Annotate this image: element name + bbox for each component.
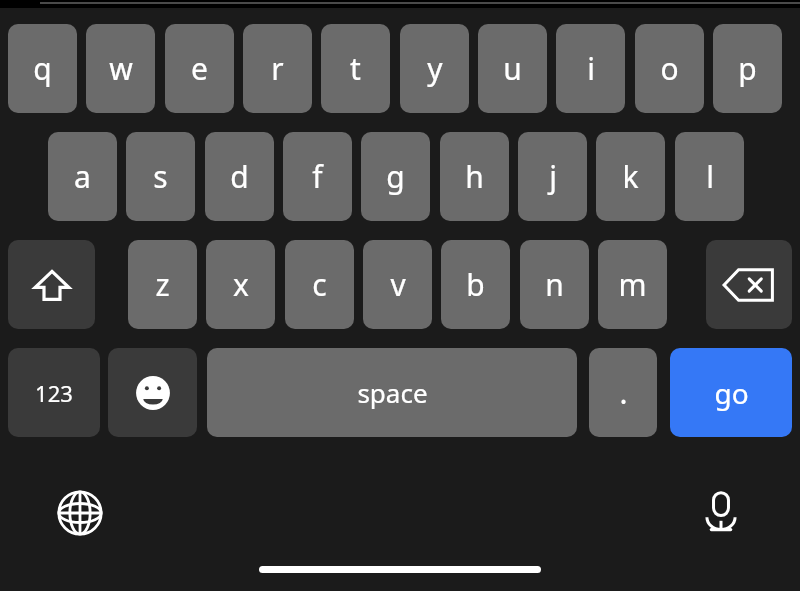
button[interactable]: k [596,132,665,221]
staticText: o [660,48,679,89]
staticText: p [738,48,757,89]
button[interactable]: h [440,132,509,221]
staticText: r [271,48,284,89]
button[interactable]: v [363,240,432,329]
staticText: t [350,48,361,89]
staticText: j [549,156,557,197]
button[interactable]: a [48,132,117,221]
staticText: h [465,156,484,197]
button[interactable]: s [126,132,195,221]
staticText: l [706,156,714,197]
staticText: e [191,48,208,89]
staticText: n [545,264,564,305]
staticText: y [427,48,443,89]
button[interactable]: g [361,132,430,221]
button[interactable]: f [283,132,352,221]
button[interactable]: e [165,24,234,113]
button[interactable]: b [441,240,510,329]
button[interactable]: space [207,348,577,437]
staticText: go [714,374,749,412]
button[interactable]: l [675,132,744,221]
staticText: w [109,48,133,89]
button[interactable]: Shift [8,240,95,329]
button[interactable]: Delete [706,240,792,329]
button[interactable]: d [205,132,274,221]
staticText: m [618,264,647,305]
staticText: space [357,375,428,410]
button[interactable]: r [243,24,312,113]
button[interactable]: m [598,240,667,329]
button[interactable]: z [128,240,197,329]
button[interactable]: q [8,24,77,113]
button[interactable]: c [285,240,354,329]
staticText: s [153,156,168,197]
button[interactable]: i [556,24,625,113]
staticText: d [230,156,249,197]
button[interactable]: Dictate [689,480,753,544]
button[interactable]: x [206,240,275,329]
button[interactable]: 123 [8,348,100,437]
staticText: x [233,264,249,305]
button[interactable]: Change keyboard language [48,481,112,545]
staticText: g [386,156,405,197]
button[interactable]: go [670,348,792,437]
staticText: . [619,372,628,413]
button[interactable]: p [713,24,782,113]
staticText: v [390,264,406,305]
button[interactable]: Emoji [108,348,197,437]
staticText: i [587,48,595,89]
button[interactable]: j [518,132,587,221]
staticText: f [312,156,323,197]
button[interactable]: . [589,348,657,437]
staticText: q [33,48,52,89]
staticText: k [622,156,639,197]
staticText: z [155,264,170,305]
button[interactable]: w [86,24,155,113]
button[interactable]: o [635,24,704,113]
staticText: 123 [35,378,73,408]
staticText: a [74,156,91,197]
staticText: b [466,264,485,305]
button[interactable]: t [321,24,390,113]
button[interactable]: u [478,24,547,113]
button[interactable]: y [400,24,469,113]
button[interactable]: n [520,240,589,329]
staticText: c [312,264,327,305]
staticText: u [503,48,522,89]
